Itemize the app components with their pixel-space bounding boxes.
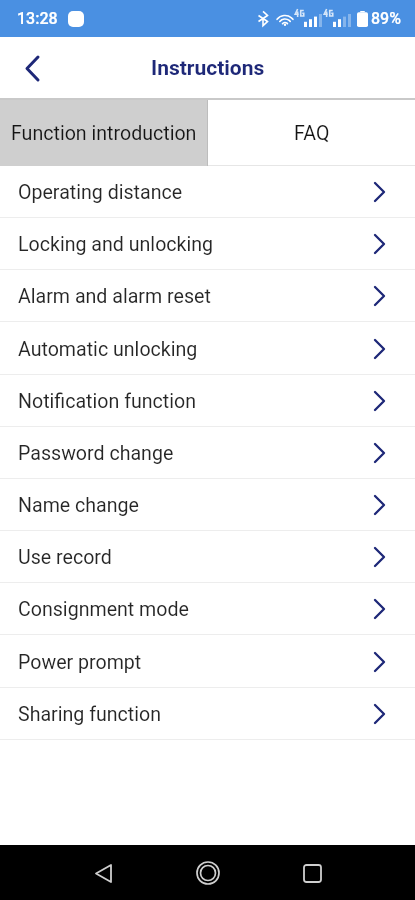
button[interactable]: Power prompt — [0, 636, 415, 688]
button[interactable]: Recents — [292, 853, 332, 893]
button[interactable]: Alarm and alarm reset — [0, 270, 415, 322]
button[interactable]: Function introduction — [0, 100, 207, 166]
button[interactable]: Name change — [0, 479, 415, 531]
staticText: 89% — [371, 9, 401, 28]
staticText: Consignment mode — [18, 598, 189, 621]
staticText: Password change — [18, 442, 174, 465]
button[interactable]: Sharing function — [0, 688, 415, 740]
button[interactable]: Automatic unlocking — [0, 323, 415, 375]
staticText: Automatic unlocking — [18, 338, 198, 361]
staticText: Instructions — [151, 56, 265, 81]
staticText: Use record — [18, 546, 112, 569]
staticText: Name change — [18, 494, 139, 517]
staticText: Function introduction — [11, 122, 197, 145]
staticText: Sharing function — [18, 703, 162, 726]
button[interactable]: Password change — [0, 427, 415, 479]
staticText: Alarm and alarm reset — [18, 285, 211, 308]
button[interactable]: Operating distance — [0, 166, 415, 218]
staticText: FAQ — [294, 122, 330, 145]
button[interactable]: Home — [188, 853, 228, 893]
staticText: Notification function — [18, 390, 196, 413]
staticText: Power prompt — [18, 651, 142, 674]
button[interactable]: Notification function — [0, 375, 415, 427]
button[interactable]: Locking and unlocking — [0, 218, 415, 270]
staticText: Locking and unlocking — [18, 233, 214, 256]
button[interactable]: FAQ — [208, 100, 415, 166]
staticText: Operating distance — [18, 181, 183, 204]
button[interactable]: Consignment mode — [0, 583, 415, 635]
button[interactable]: Back — [0, 37, 64, 100]
button[interactable]: Use record — [0, 531, 415, 583]
button[interactable]: Back — [83, 853, 123, 893]
staticText: 13:28 — [17, 9, 58, 28]
